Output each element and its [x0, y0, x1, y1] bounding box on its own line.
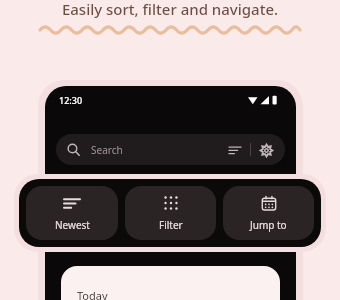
staticText: Jump to — [250, 218, 287, 232]
staticText: Search — [91, 143, 123, 157]
button[interactable]: Jump to — [223, 186, 314, 240]
button[interactable]: Settings — [258, 142, 274, 158]
staticText: Newest — [55, 218, 90, 232]
button[interactable]: Newest — [26, 186, 118, 240]
staticText: Easily sort, filter and navigate. — [0, 0, 340, 19]
button[interactable]: Today — [61, 266, 280, 300]
button[interactable]: Filter — [125, 186, 216, 240]
staticText: Filter — [159, 218, 183, 232]
staticText: 12:30 — [59, 94, 83, 106]
staticText: Today — [77, 288, 108, 300]
button[interactable]: Search — [56, 134, 285, 165]
button[interactable]: Sort — [227, 142, 243, 158]
